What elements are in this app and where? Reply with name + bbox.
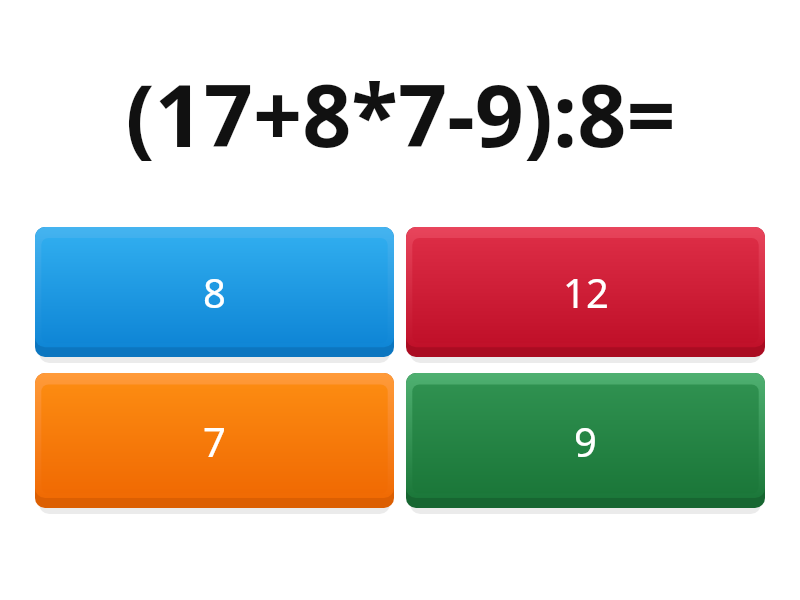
staticText: 8 (203, 265, 226, 319)
button[interactable]: 9 (406, 373, 765, 508)
staticText: (17+8*7-9):8= (125, 55, 676, 172)
button[interactable]: 8 (35, 227, 394, 357)
staticText: 9 (574, 414, 597, 468)
staticText: 7 (203, 414, 226, 468)
button[interactable]: 7 (35, 373, 394, 508)
staticText: 12 (563, 265, 609, 319)
button[interactable]: 12 (406, 227, 765, 357)
